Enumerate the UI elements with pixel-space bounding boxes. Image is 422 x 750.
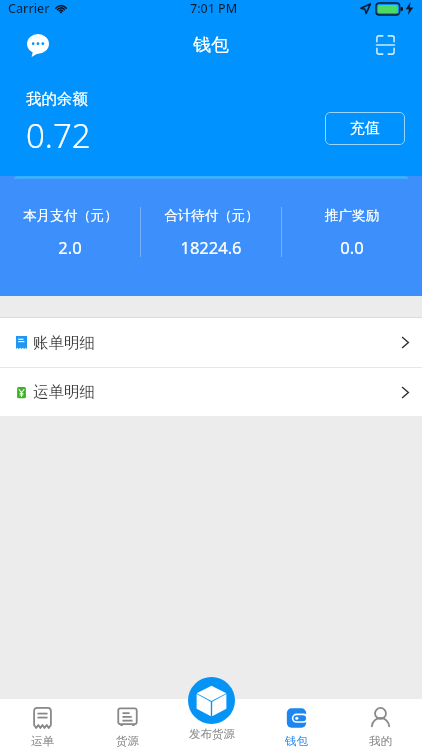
staticText: 充值 — [350, 119, 380, 138]
button[interactable]: 货源 — [85, 699, 170, 750]
button[interactable]: 推广奖励 — [282, 207, 422, 258]
button[interactable]: 发布货源 — [170, 699, 254, 741]
button[interactable]: 账单明细 — [0, 318, 422, 367]
button[interactable]: 本月支付（元） — [0, 207, 140, 258]
staticText: 钱包 — [193, 34, 229, 57]
staticText: 账单明细 — [33, 333, 95, 353]
staticText: 发布货源 — [189, 727, 235, 741]
staticText: 合计待付（元） — [164, 207, 259, 224]
staticText: 运单明细 — [33, 382, 95, 402]
staticText: 运单 — [31, 734, 54, 748]
button[interactable]: 合计待付（元） — [141, 207, 281, 258]
staticText: 18224.6 — [180, 236, 242, 258]
staticText: 0.72 — [26, 113, 91, 158]
button[interactable]: Scan — [368, 28, 402, 62]
staticText: 本月支付（元） — [23, 207, 118, 224]
staticText: Carrier — [8, 0, 50, 17]
button[interactable]: 充值 — [325, 112, 405, 145]
staticText: 推广奖励 — [325, 207, 379, 224]
staticText: 0.0 — [340, 236, 364, 258]
staticText: 我的 — [369, 734, 392, 748]
staticText: 2.0 — [58, 236, 82, 258]
staticText: 货源 — [116, 734, 139, 748]
staticText: 钱包 — [285, 734, 308, 748]
button[interactable]: 我的 — [338, 699, 422, 750]
button[interactable]: Messages — [21, 28, 55, 62]
button[interactable]: 运单 — [0, 699, 85, 750]
button[interactable]: 钱包 — [254, 699, 338, 750]
button[interactable]: 发布货源 — [188, 677, 235, 724]
button[interactable]: 运单明细 — [0, 368, 422, 416]
staticText: 我的余额 — [26, 89, 88, 109]
staticText: 7:01 PM — [190, 0, 238, 17]
